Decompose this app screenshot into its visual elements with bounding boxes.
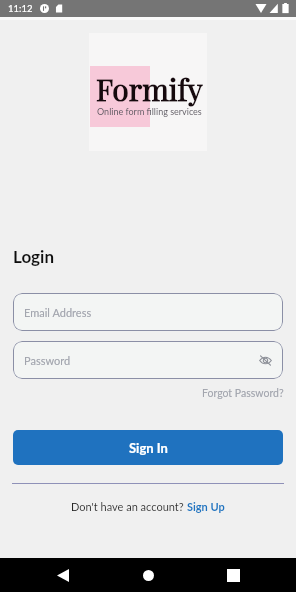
button[interactable]: Sign In	[13, 430, 283, 465]
staticText: 11:12	[8, 3, 33, 14]
staticText: Password	[24, 354, 71, 367]
staticText: Formify	[96, 69, 203, 109]
button[interactable]: Home	[131, 558, 166, 592]
staticText: Email Address	[24, 306, 92, 319]
staticText: Sign In	[129, 440, 168, 456]
staticText: Login	[13, 246, 54, 266]
button[interactable]: Sign Up	[187, 500, 225, 513]
button[interactable]: Forgot Password?	[202, 387, 284, 400]
button[interactable]: Toggle password visibility	[257, 352, 273, 368]
button[interactable]: Password	[13, 341, 283, 379]
button[interactable]: Back	[45, 558, 80, 592]
button[interactable]: Email Address	[13, 293, 283, 331]
staticText: Online form filling services	[97, 106, 202, 117]
staticText: Don't have an account?	[71, 500, 187, 513]
button[interactable]: Recents	[216, 558, 251, 592]
